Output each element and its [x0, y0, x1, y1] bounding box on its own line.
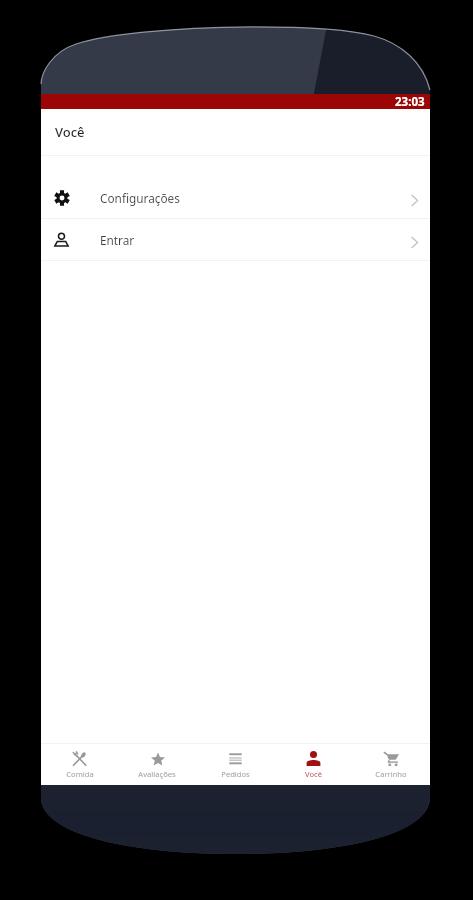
- button[interactable]: Avaliações: [118, 744, 196, 785]
- button[interactable]: Entrar: [41, 219, 430, 261]
- staticText: Comida: [66, 769, 94, 779]
- staticText: Entrar: [100, 232, 135, 248]
- button[interactable]: Carrinho: [352, 744, 430, 785]
- staticText: Pedidos: [221, 769, 250, 779]
- staticText: Você: [55, 123, 85, 141]
- button[interactable]: Você: [274, 744, 352, 785]
- button[interactable]: Configurações: [41, 177, 430, 219]
- button[interactable]: Comida: [41, 744, 118, 785]
- staticText: 23:03: [395, 94, 425, 109]
- staticText: Você: [305, 769, 322, 779]
- button[interactable]: Pedidos: [196, 744, 274, 785]
- staticText: Avaliações: [138, 769, 176, 779]
- staticText: Configurações: [100, 190, 180, 206]
- staticText: Carrinho: [375, 769, 407, 779]
